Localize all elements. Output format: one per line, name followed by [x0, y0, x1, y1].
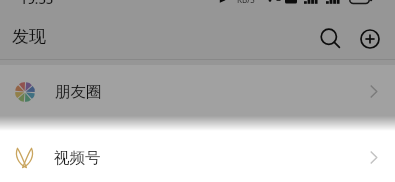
staticText: 发现: [12, 26, 46, 47]
button[interactable]: Add: [351, 16, 395, 61]
staticText: 朋友圈: [55, 82, 102, 102]
staticText: KB/S: [237, 0, 255, 5]
button[interactable]: 视频号: [0, 133, 395, 182]
button[interactable]: 朋友圈: [0, 65, 395, 118]
staticText: 19:55: [20, 0, 54, 4]
staticText: 视频号: [54, 148, 101, 168]
button[interactable]: Search: [309, 16, 351, 61]
